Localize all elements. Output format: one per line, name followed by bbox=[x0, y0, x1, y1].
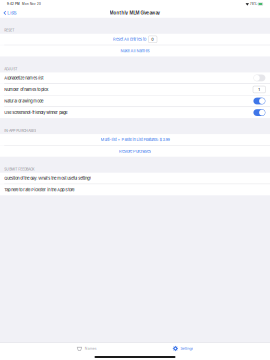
staticText: Restore Purchases bbox=[119, 149, 151, 154]
button[interactable]: Tap here to rate Pickster in the App Sto… bbox=[0, 184, 270, 195]
button[interactable]: Lists bbox=[0, 8, 19, 18]
button[interactable]: Reset All Entries to bbox=[0, 34, 270, 45]
staticText: IN-APP PURCHASES bbox=[4, 129, 36, 133]
staticText: Lists bbox=[7, 10, 16, 16]
button[interactable]: Multi-list + Paste in List Features: $3.… bbox=[0, 134, 270, 145]
staticText: Nuke All Names bbox=[120, 48, 149, 53]
staticText: RESET bbox=[4, 28, 14, 32]
button[interactable]: Names bbox=[71, 343, 103, 353]
staticText: Reset All Entries to bbox=[113, 37, 146, 42]
button[interactable]: Nuke All Names bbox=[0, 45, 270, 56]
staticText: SUBMIT FEEDBACK bbox=[4, 167, 34, 171]
button[interactable]: Settings bbox=[167, 343, 199, 353]
staticText: ADJUST bbox=[4, 67, 17, 71]
button[interactable]: Natural drawing mode bbox=[0, 95, 270, 107]
staticText: Question of the day: What's the most use… bbox=[4, 176, 91, 181]
staticText: Use screenshot-friendly winner page bbox=[4, 110, 67, 115]
button[interactable]: Use screenshot-friendly winner page bbox=[0, 107, 270, 118]
staticText: 0 bbox=[151, 37, 154, 42]
staticText: Natural drawing mode bbox=[4, 99, 43, 103]
staticText: 9:42 PM bbox=[7, 2, 20, 6]
button[interactable]: Restore Purchases bbox=[0, 146, 270, 157]
staticText: 78% bbox=[249, 2, 257, 6]
staticText: Number of names to pick bbox=[4, 87, 48, 92]
staticText: Tap here to rate Pickster in the App Sto… bbox=[4, 187, 74, 192]
staticText: Settings bbox=[180, 346, 193, 351]
staticText: Mon Nov 20 bbox=[20, 2, 41, 6]
staticText: Multi-list + Paste in List Features: $3.… bbox=[100, 137, 169, 142]
staticText: Alphabetize names list bbox=[4, 75, 43, 80]
staticText: Monthly MLM Giveaway bbox=[109, 10, 160, 15]
button[interactable]: Question of the day: What's the most use… bbox=[0, 173, 270, 184]
button[interactable]: Alphabetize names list bbox=[0, 72, 270, 83]
staticText: Names bbox=[85, 346, 97, 351]
staticText: 1 bbox=[258, 87, 260, 92]
